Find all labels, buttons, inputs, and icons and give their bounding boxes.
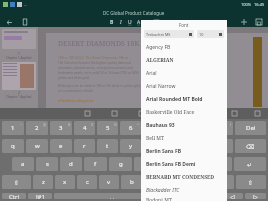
button[interactable]: Format bbox=[134, 17, 143, 27]
button[interactable]: Bodoni MT bbox=[141, 197, 227, 201]
staticText: h bbox=[144, 160, 148, 168]
button[interactable]: Save bbox=[254, 17, 264, 27]
button[interactable]: 4 bbox=[74, 121, 95, 135]
button[interactable]: i bbox=[166, 139, 187, 153]
button[interactable]: . bbox=[213, 175, 234, 189]
button[interactable]: , bbox=[190, 175, 211, 189]
button[interactable]: Bauhaus 93 bbox=[141, 119, 227, 132]
button[interactable]: Format bbox=[125, 17, 134, 27]
staticText: @ bbox=[43, 122, 47, 127]
staticText: A bbox=[137, 19, 141, 26]
button[interactable]: 3 bbox=[50, 121, 72, 135]
button[interactable]: Arial bbox=[141, 67, 227, 80]
button[interactable]: Baskerville Old Face bbox=[141, 106, 227, 119]
button[interactable]: Back bbox=[4, 17, 14, 27]
button[interactable]: ↵ bbox=[234, 157, 266, 171]
button[interactable]: k bbox=[184, 157, 207, 171]
staticText: ^ bbox=[137, 122, 140, 127]
button[interactable]: ⇧ bbox=[2, 175, 31, 189]
button[interactable]: r bbox=[74, 139, 95, 153]
staticText: 7 bbox=[152, 124, 156, 132]
button[interactable]: m bbox=[167, 175, 188, 189]
button[interactable]: p bbox=[212, 139, 233, 153]
button[interactable]: Blackadder ITC bbox=[141, 184, 227, 197]
button[interactable]: Berlin Sans FB Demi bbox=[141, 158, 227, 171]
button[interactable]: Format bbox=[116, 17, 125, 27]
button[interactable]: !#1 bbox=[28, 193, 52, 199]
staticText: c bbox=[86, 178, 89, 186]
button[interactable]: BERNARD MT CONDENSED bbox=[141, 171, 227, 184]
staticText: a bbox=[21, 160, 25, 168]
button[interactable]: Keyboard bbox=[110, 109, 119, 118]
button[interactable]: Settings bbox=[230, 109, 239, 118]
staticText: 2 bbox=[18, 90, 21, 95]
button[interactable]: Clipboard bbox=[83, 109, 92, 118]
button[interactable]: h bbox=[134, 157, 157, 171]
staticText: Berlin Sans FB bbox=[146, 148, 181, 155]
button[interactable]: w bbox=[26, 139, 48, 153]
button[interactable]: 8 bbox=[166, 121, 187, 135]
button[interactable]: s bbox=[36, 157, 58, 171]
button[interactable]: n bbox=[144, 175, 165, 189]
button[interactable]: 6 bbox=[120, 121, 141, 135]
button[interactable]: z bbox=[33, 175, 53, 189]
button[interactable]: Trebuchet MS bbox=[144, 30, 194, 38]
button[interactable]: Arial Narrow bbox=[141, 80, 227, 93]
button[interactable]: 0 bbox=[212, 121, 233, 135]
button[interactable]: a bbox=[12, 157, 34, 171]
button[interactable]: f bbox=[84, 157, 107, 171]
button[interactable]: ALGERIAN bbox=[141, 54, 227, 67]
button[interactable]: c bbox=[77, 175, 97, 189]
button[interactable]: b bbox=[121, 175, 142, 189]
button[interactable]: Berlin Sans FB bbox=[141, 145, 227, 158]
button[interactable]: Del bbox=[235, 121, 266, 135]
staticText: 14k Collection features the highest qual… bbox=[58, 61, 131, 65]
staticText: I bbox=[120, 19, 122, 26]
button[interactable]: l bbox=[209, 157, 232, 171]
button[interactable]: 10 bbox=[197, 30, 224, 38]
staticText: e bbox=[59, 142, 63, 150]
button[interactable]: 1 bbox=[2, 121, 24, 135]
button[interactable]: v bbox=[99, 175, 119, 189]
button[interactable]: t bbox=[97, 139, 118, 153]
button[interactable]: ⌫ bbox=[235, 139, 266, 153]
button[interactable]: Voice input bbox=[137, 109, 146, 118]
button[interactable]: u bbox=[143, 139, 164, 153]
staticText: w bbox=[35, 142, 40, 150]
button[interactable]: ▷ bbox=[245, 193, 266, 199]
button[interactable]: j bbox=[159, 157, 182, 171]
button[interactable]: ␣ bbox=[54, 193, 170, 199]
button[interactable]: ⇧ bbox=[236, 175, 266, 189]
button[interactable]: 5 bbox=[97, 121, 118, 135]
button[interactable]: y bbox=[120, 139, 141, 153]
button[interactable]: Arial Rounded MT Bold bbox=[141, 93, 227, 106]
button[interactable]: Format bbox=[143, 17, 152, 27]
staticText: 18K or 14K GOLD The Desert Diamonds 18k … bbox=[58, 56, 129, 60]
button[interactable]: 2 bbox=[26, 121, 48, 135]
button[interactable]: Hide keyboard bbox=[253, 109, 262, 118]
button[interactable]: g bbox=[109, 157, 132, 171]
button[interactable]: Ctrl bbox=[2, 193, 26, 199]
button[interactable]: e bbox=[50, 139, 72, 153]
button[interactable]: 7 bbox=[143, 121, 164, 135]
button[interactable]: Bell MT bbox=[141, 132, 227, 145]
button[interactable]: Format bbox=[107, 17, 116, 27]
button[interactable]: Format bbox=[152, 17, 161, 27]
staticText: i bbox=[176, 142, 178, 150]
button[interactable]: Document bbox=[20, 17, 30, 27]
staticText: ▷ bbox=[253, 193, 258, 199]
button[interactable]: Add bbox=[239, 17, 249, 27]
button[interactable]: q bbox=[2, 139, 24, 153]
button[interactable]: x bbox=[55, 175, 75, 189]
button[interactable]: Agency FB bbox=[141, 41, 227, 54]
button[interactable]: d bbox=[60, 157, 82, 171]
staticText: ⇧ bbox=[248, 179, 254, 186]
staticText: f bbox=[94, 160, 97, 168]
button[interactable]: ◁ bbox=[222, 193, 243, 199]
